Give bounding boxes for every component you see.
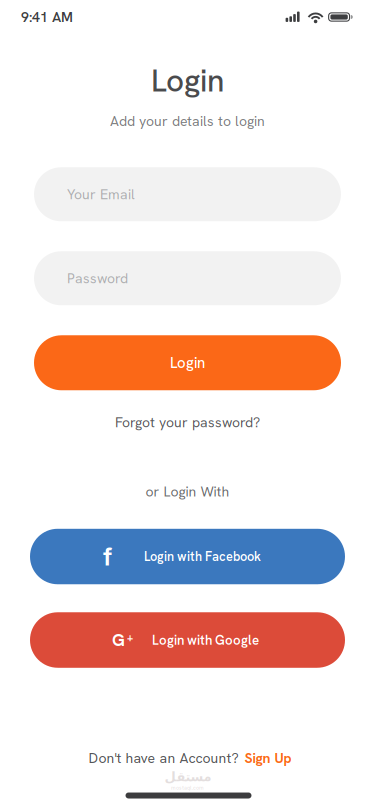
staticText: mostaql.com — [171, 784, 204, 791]
button[interactable]: Forgot your password? — [115, 413, 260, 431]
staticText: 9:41 AM — [21, 8, 73, 26]
staticText: f — [103, 540, 112, 573]
staticText: + — [127, 630, 133, 645]
staticText: Add your details to login — [110, 112, 265, 130]
staticText: or Login With — [145, 482, 229, 501]
staticText: Login with Google — [152, 631, 259, 649]
button[interactable]: G — [30, 612, 345, 668]
staticText: G — [112, 629, 125, 651]
staticText: مستقل — [164, 769, 211, 784]
staticText: Login — [151, 60, 224, 101]
staticText: Don't have an Account? — [88, 749, 238, 767]
button[interactable]: Login — [34, 335, 341, 390]
staticText: Your Email — [67, 185, 135, 203]
staticText: Login with Facebook — [144, 548, 261, 565]
staticText: Forgot your password? — [115, 413, 260, 431]
staticText: Login — [170, 353, 205, 372]
staticText: Sign Up — [244, 749, 291, 767]
staticText: Password — [67, 269, 128, 287]
button[interactable]: f — [30, 529, 345, 584]
button[interactable]: Sign Up — [244, 749, 291, 767]
